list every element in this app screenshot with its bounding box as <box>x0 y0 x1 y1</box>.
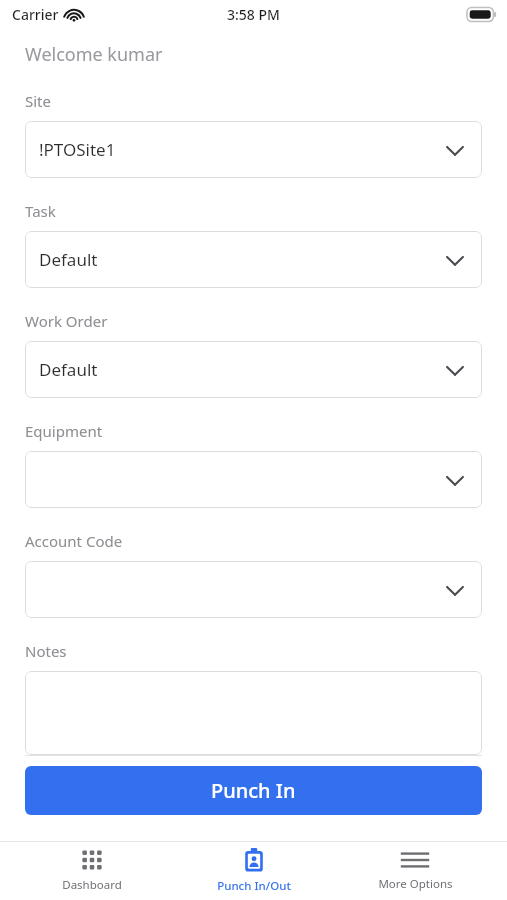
button[interactable]: Dashboard <box>22 842 162 900</box>
staticText: Site <box>25 91 51 111</box>
button[interactable]: Open Equipment dropdown <box>25 451 482 508</box>
staticText: Punch In <box>211 777 296 804</box>
other: Open Task dropdown <box>444 249 466 271</box>
staticText: !PTOSite1 <box>39 138 116 161</box>
staticText: Account Code <box>25 531 123 551</box>
button[interactable]: Default <box>25 341 482 398</box>
staticText: More Options <box>378 876 453 892</box>
staticText: Welcome kumar <box>25 42 163 67</box>
staticText: Notes <box>25 641 67 661</box>
other: Open Equipment dropdown <box>444 469 466 491</box>
button[interactable]: Punch In/Out <box>184 842 324 900</box>
other: Open Work Order dropdown <box>444 359 466 381</box>
staticText: Equipment <box>25 421 103 441</box>
staticText: Default <box>39 358 98 381</box>
staticText: Punch In/Out <box>217 878 291 894</box>
other: Open Site dropdown <box>444 139 466 161</box>
staticText: Default <box>39 248 98 271</box>
staticText: Carrier <box>12 5 59 24</box>
staticText: Dashboard <box>62 877 122 893</box>
staticText: Work Order <box>25 311 108 331</box>
button[interactable]: Open Account Code dropdown <box>25 561 482 618</box>
button[interactable]: Default <box>25 231 482 288</box>
button[interactable]: More Options <box>345 842 485 900</box>
staticText: Task <box>25 201 56 221</box>
button[interactable] <box>25 671 482 755</box>
button[interactable]: !PTOSite1 <box>25 121 482 178</box>
staticText: 3:58 PM <box>227 5 280 24</box>
other: Open Account Code dropdown <box>444 579 466 601</box>
button[interactable]: Punch In <box>25 766 482 815</box>
